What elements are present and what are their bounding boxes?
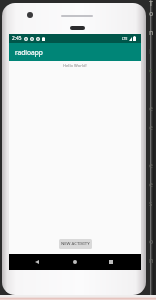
staticText: o <box>149 237 154 247</box>
staticText: e <box>149 123 153 133</box>
staticText: 2:45 <box>12 35 22 42</box>
button[interactable]: radioapp <box>9 43 141 61</box>
staticText <box>149 218 151 228</box>
staticText <box>149 85 151 95</box>
staticText: LTE <box>122 37 128 41</box>
staticText: e <box>149 180 153 190</box>
staticText: e <box>149 161 153 171</box>
button[interactable]: Back <box>31 256 43 268</box>
button[interactable]: Home <box>69 256 81 268</box>
staticText: radioapp <box>15 48 43 57</box>
staticText: n <box>149 256 154 266</box>
staticText: n <box>149 28 154 38</box>
button[interactable]: NEW ACTIVITY <box>59 239 92 249</box>
staticText: Hello World! <box>63 63 87 69</box>
staticText: l <box>149 47 151 57</box>
staticText: c <box>149 66 153 76</box>
staticText: NEW ACTIVITY <box>61 241 90 247</box>
button[interactable]: Recent apps <box>105 256 117 268</box>
staticText <box>149 142 151 152</box>
staticText: e <box>149 104 153 114</box>
staticText: s <box>149 199 153 209</box>
staticText: To <box>149 0 156 19</box>
